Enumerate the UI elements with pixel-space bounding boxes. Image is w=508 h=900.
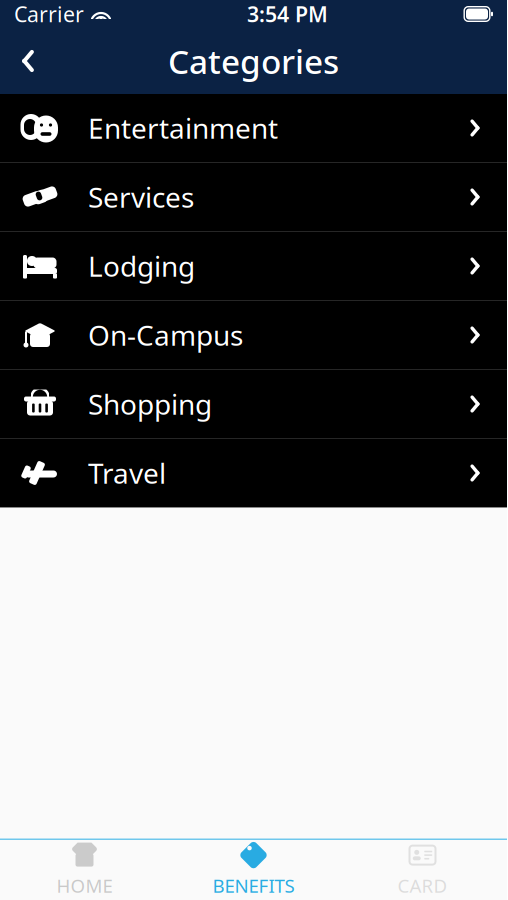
staticText: Services: [88, 178, 194, 216]
button[interactable]: Lodging: [0, 232, 507, 300]
button[interactable]: Travel: [0, 439, 507, 507]
staticText: Entertainment: [88, 109, 278, 147]
staticText: On-Campus: [88, 316, 243, 354]
staticText: Lodging: [88, 247, 195, 285]
button[interactable]: Entertainment: [0, 94, 507, 162]
staticText: BENEFITS: [212, 873, 294, 898]
button[interactable]: BENEFITS: [169, 840, 338, 900]
button[interactable]: CARD: [338, 840, 507, 900]
button[interactable]: HOME: [0, 840, 169, 900]
staticText: Travel: [88, 454, 166, 492]
button[interactable]: Services: [0, 163, 507, 231]
staticText: Shopping: [88, 385, 212, 423]
staticText: Carrier: [14, 0, 84, 28]
staticText: CARD: [397, 873, 447, 898]
button[interactable]: Back: [0, 33, 56, 89]
button[interactable]: Shopping: [0, 370, 507, 438]
staticText: 3:54 PM: [247, 0, 328, 28]
staticText: Categories: [168, 39, 339, 83]
staticText: HOME: [56, 873, 112, 898]
button[interactable]: On-Campus: [0, 301, 507, 369]
